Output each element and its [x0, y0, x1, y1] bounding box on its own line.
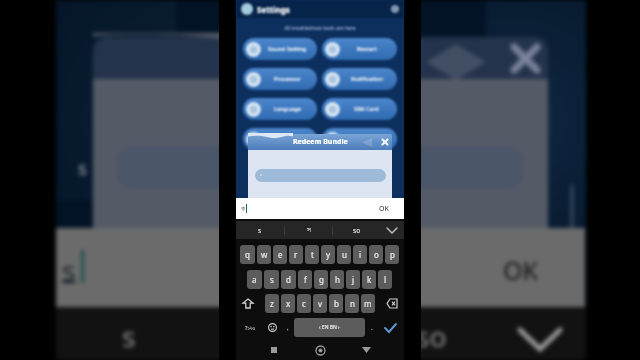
staticText: Redeem Bundle [293, 137, 348, 147]
staticText: , [287, 324, 289, 332]
button[interactable]: k [362, 270, 376, 289]
staticText: x [286, 298, 291, 309]
staticText: h [335, 274, 340, 285]
button[interactable]: More options [391, 5, 399, 13]
staticText: y [326, 249, 331, 260]
button[interactable]: Shift [238, 294, 258, 313]
staticText: Processor [274, 75, 301, 83]
staticText: u [342, 249, 347, 260]
staticText: SIM Card [354, 105, 379, 113]
button[interactable]: ?১২৩ [238, 318, 262, 337]
button[interactable]: v [313, 294, 327, 313]
button[interactable]: y [321, 245, 335, 264]
button[interactable]: x [281, 294, 295, 313]
button[interactable]: i [353, 245, 367, 264]
staticText: q [245, 249, 250, 260]
staticText: OK [379, 204, 389, 214]
staticText: v [318, 298, 323, 309]
button[interactable]: Backspace [382, 294, 402, 313]
button[interactable]: Home [312, 342, 328, 358]
button[interactable]: s [264, 270, 279, 289]
button[interactable]: Emoji [263, 318, 281, 337]
staticText: s [62, 251, 76, 289]
staticText: Language [274, 105, 301, 113]
button[interactable]: h [330, 270, 344, 289]
staticText: k [367, 274, 372, 285]
button[interactable]: Battery [322, 128, 397, 150]
button[interactable]: t [305, 245, 319, 264]
staticText: c [302, 298, 306, 309]
button[interactable]: Recents [266, 342, 282, 358]
button[interactable]: z [265, 294, 279, 313]
staticText: ‹ EN BN › [319, 324, 340, 331]
button[interactable]: j [346, 270, 360, 289]
button[interactable]: n [345, 294, 359, 313]
staticText: d [286, 274, 291, 285]
button[interactable]: c [297, 294, 311, 313]
staticText: স [307, 226, 311, 234]
staticText: l [384, 274, 387, 285]
staticText: Notification [351, 75, 383, 83]
staticText: s [122, 317, 136, 355]
staticText: r [294, 249, 298, 260]
button[interactable] [255, 169, 386, 182]
button[interactable]: s [236, 221, 284, 239]
staticText: g [319, 274, 324, 285]
button[interactable]: SIM Card [322, 98, 397, 120]
staticText: w [261, 249, 268, 260]
staticText: . [371, 324, 373, 332]
button[interactable]: m [361, 294, 375, 313]
button[interactable]: OK [375, 200, 393, 218]
staticText: Settings [257, 4, 290, 15]
button[interactable]: r [289, 245, 303, 264]
button[interactable]: b [329, 294, 343, 313]
button[interactable]: so [333, 221, 380, 239]
staticText: e [278, 249, 283, 260]
staticText: Battery [356, 135, 377, 143]
button[interactable]: w [257, 245, 271, 264]
button[interactable]: , [282, 318, 293, 337]
staticText: j [352, 274, 355, 285]
button[interactable]: Restart [322, 38, 397, 60]
button[interactable]: f [298, 270, 312, 289]
button[interactable]: u [337, 245, 351, 264]
button[interactable]: d [281, 270, 296, 289]
button[interactable]: Back [358, 342, 374, 358]
staticText: Restart [357, 45, 377, 53]
staticText: z [270, 298, 274, 309]
button[interactable]: Processor [243, 68, 317, 90]
staticText: f [304, 274, 307, 285]
button[interactable]: Collapse suggestions [380, 221, 404, 239]
button[interactable]: Close dialog [381, 138, 389, 146]
staticText: Display [277, 135, 297, 143]
staticText: t [311, 249, 314, 260]
staticText: ?১২৩ [245, 324, 256, 331]
staticText: ক [241, 205, 245, 212]
staticText: s [78, 156, 87, 181]
staticText: b [334, 298, 339, 309]
button[interactable]: p [385, 245, 399, 264]
staticText: s [270, 274, 274, 285]
staticText: All troubleshoot tools are here [236, 25, 404, 32]
staticText: i [359, 249, 362, 260]
staticText: m [364, 298, 372, 309]
staticText: p [390, 249, 395, 260]
button[interactable]: ‹ EN BN › [294, 318, 365, 337]
button[interactable]: o [369, 245, 383, 264]
button[interactable]: g [314, 270, 328, 289]
button[interactable]: . [366, 318, 377, 337]
button[interactable]: Notification [322, 68, 397, 90]
button[interactable]: App logo [241, 3, 253, 15]
staticText: so [353, 226, 361, 235]
button[interactable]: Display [243, 128, 317, 150]
button[interactable]: স [285, 221, 332, 239]
button[interactable]: Enter [378, 318, 402, 337]
button[interactable]: Language [243, 98, 317, 120]
button[interactable]: q [240, 245, 255, 264]
button[interactable]: Sound Setting [243, 38, 317, 60]
button[interactable]: a [247, 270, 262, 289]
button[interactable]: e [273, 245, 287, 264]
staticText: OK [503, 253, 539, 287]
staticText: so [416, 317, 447, 355]
button[interactable]: l [378, 270, 392, 289]
